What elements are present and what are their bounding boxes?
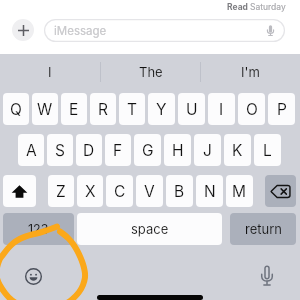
button[interactable]: E (61, 93, 87, 125)
staticText: N (204, 182, 216, 201)
button[interactable]: Y (148, 93, 175, 125)
button[interactable]: O (238, 93, 265, 125)
staticText: O (246, 100, 258, 119)
staticText: Z (56, 182, 66, 201)
button[interactable]: Emoji keyboard (24, 267, 43, 286)
staticText: C (114, 182, 126, 201)
staticText: H (172, 141, 184, 160)
button[interactable]: Dictation (261, 265, 273, 286)
button[interactable]: L (254, 134, 281, 166)
button[interactable]: D (76, 134, 102, 166)
button[interactable]: X (77, 175, 103, 207)
button[interactable]: 123 (3, 213, 74, 245)
button[interactable]: Add attachment (12, 19, 34, 41)
button[interactable]: T (119, 93, 145, 125)
other: Dictate message (267, 25, 274, 36)
button[interactable]: S (47, 134, 73, 166)
staticText: U (186, 100, 198, 119)
button[interactable]: C (106, 175, 133, 207)
staticText: T (127, 100, 138, 119)
button[interactable]: space (77, 213, 222, 245)
button[interactable]: Z (48, 175, 74, 207)
button[interactable]: I (0, 54, 100, 90)
button[interactable]: The (101, 54, 200, 90)
staticText: iMessage (54, 24, 107, 38)
button[interactable]: J (194, 134, 221, 166)
staticText: G (142, 141, 154, 160)
staticText: space (131, 221, 169, 237)
staticText: V (144, 182, 155, 201)
button[interactable]: V (136, 175, 163, 207)
staticText: K (232, 141, 243, 160)
staticText: W (37, 100, 53, 119)
button[interactable]: R (90, 93, 116, 125)
staticText: D (83, 141, 95, 160)
staticText: S (55, 141, 65, 160)
button[interactable]: iMessage (44, 19, 285, 42)
staticText: L (263, 141, 272, 160)
staticText: I (48, 64, 52, 80)
staticText: A (26, 141, 37, 160)
staticText: B (174, 182, 185, 201)
staticText: R (98, 100, 108, 119)
button[interactable]: B (166, 175, 193, 207)
staticText: return (245, 221, 282, 237)
staticText: 123 (28, 222, 49, 237)
staticText: M (232, 182, 247, 201)
staticText: P (277, 100, 287, 119)
button[interactable]: K (224, 134, 251, 166)
button[interactable]: Q (3, 93, 29, 125)
button[interactable]: W (32, 93, 58, 125)
button[interactable]: G (134, 134, 161, 166)
staticText: Read Saturday (227, 2, 286, 12)
button[interactable]: return (230, 213, 296, 245)
button[interactable]: Shift (3, 175, 36, 207)
button[interactable]: N (196, 175, 223, 207)
staticText: X (85, 182, 96, 201)
staticText: E (69, 100, 79, 119)
staticText: I'm (241, 64, 260, 80)
button[interactable]: I (208, 93, 235, 125)
staticText: Y (156, 100, 167, 119)
button[interactable]: H (164, 134, 191, 166)
staticText: The (139, 64, 163, 80)
button[interactable]: M (226, 175, 253, 207)
button[interactable]: F (105, 134, 131, 166)
staticText: I (219, 100, 224, 119)
staticText: J (203, 141, 212, 160)
button[interactable]: U (178, 93, 205, 125)
staticText: Q (10, 100, 22, 119)
button[interactable]: Backspace (265, 175, 296, 207)
button[interactable]: A (18, 134, 44, 166)
staticText: F (113, 141, 123, 160)
button[interactable]: P (268, 93, 295, 125)
button[interactable]: I'm (201, 54, 300, 90)
